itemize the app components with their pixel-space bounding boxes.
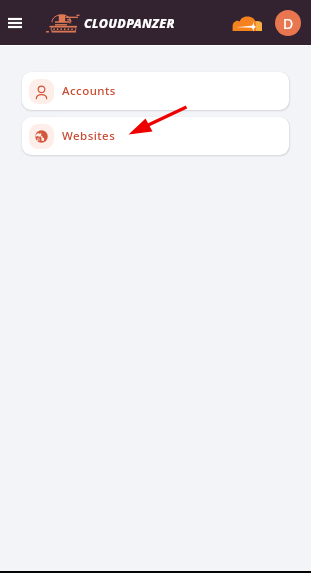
button[interactable]: Websites (22, 117, 289, 155)
staticText: CLOUDPANZER (84, 15, 175, 32)
staticText: Accounts (62, 83, 116, 99)
button[interactable]: Account avatar D (275, 10, 301, 36)
staticText: D (283, 14, 294, 33)
button[interactable]: CLOUDPANZER (46, 6, 178, 40)
button[interactable]: Accounts (22, 72, 289, 110)
staticText: Websites (62, 128, 116, 144)
button[interactable]: Open navigation menu (0, 7, 31, 39)
button[interactable]: Cloudflare (229, 8, 265, 38)
